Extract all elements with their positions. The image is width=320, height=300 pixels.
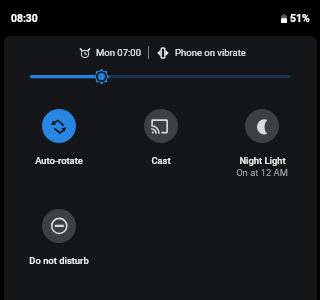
button[interactable]: Mon 07:00	[77, 44, 144, 61]
button[interactable]: Brightness	[24, 64, 297, 89]
button[interactable]: Phone on vibrate	[154, 44, 249, 61]
staticText: 51%	[290, 12, 310, 24]
button[interactable]: Do not disturb	[9, 205, 109, 271]
staticText: On at 12 AM	[236, 167, 288, 178]
staticText: Auto-rotate	[35, 155, 83, 166]
button[interactable]: Cast	[111, 105, 211, 171]
other: Night Light	[254, 118, 271, 135]
other: Auto-rotate	[51, 118, 68, 135]
staticText: Do not disturb	[29, 255, 89, 266]
other: Cast	[153, 118, 170, 135]
staticText: Cast	[151, 155, 171, 166]
staticText: 08:30	[11, 12, 38, 24]
other: Do not disturb	[51, 218, 68, 235]
staticText: Phone on vibrate	[175, 47, 246, 58]
staticText: Mon 07:00	[96, 47, 141, 58]
button[interactable]: Night Light	[212, 105, 312, 183]
button[interactable]: Auto-rotate	[9, 105, 109, 171]
staticText: Night Light	[239, 155, 286, 166]
